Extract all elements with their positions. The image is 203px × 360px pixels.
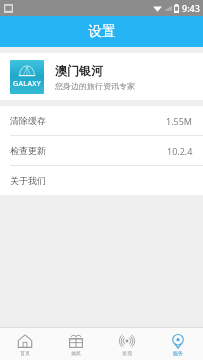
button[interactable]: 发现 — [101, 328, 152, 360]
button[interactable]: 抽奖 — [50, 328, 101, 360]
button[interactable]: 检查更新 — [0, 136, 203, 165]
button[interactable]: 首页 — [0, 328, 50, 360]
staticText: 服务 — [173, 350, 183, 356]
staticText: 1.55M — [166, 115, 193, 127]
staticText: 您身边的旅行资讯专家 — [55, 81, 135, 91]
staticText: 抽奖 — [71, 350, 81, 356]
staticText: 澳门银河 — [55, 63, 103, 78]
staticText: 9:43 — [182, 2, 200, 14]
button[interactable]: GALAXY — [0, 53, 203, 100]
staticText: 检查更新 — [10, 145, 46, 156]
staticText: 关于我们 — [10, 175, 46, 186]
button[interactable]: 服务 — [152, 328, 203, 360]
button[interactable]: 清除缓存 — [0, 106, 203, 135]
staticText: GALAXY — [13, 79, 42, 89]
staticText: 设置 — [88, 23, 116, 41]
staticText: 首页 — [20, 350, 30, 356]
staticText: 清除缓存 — [10, 115, 46, 126]
staticText: 10.2.4 — [167, 145, 193, 157]
staticText: 发现 — [122, 350, 132, 356]
button[interactable]: 关于我们 — [0, 166, 203, 195]
